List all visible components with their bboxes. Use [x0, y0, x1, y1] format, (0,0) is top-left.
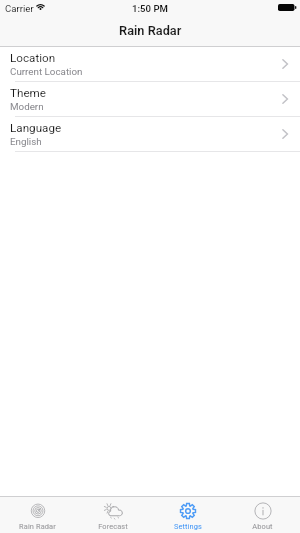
staticText: Rain Radar [119, 23, 182, 38]
staticText: Modern [10, 101, 44, 112]
staticText: Forecast [98, 522, 128, 531]
staticText: Theme [10, 86, 47, 100]
button[interactable]: Rain Radar [0, 497, 75, 533]
staticText: Current Location [10, 66, 83, 77]
staticText: Rain Radar [19, 522, 56, 531]
staticText: 1:50 PM [132, 3, 168, 14]
staticText: Settings [174, 522, 202, 531]
staticText: Carrier [5, 3, 34, 14]
button[interactable]: About [225, 497, 300, 533]
button[interactable]: Language [0, 117, 300, 152]
staticText: Language [10, 121, 62, 135]
staticText: English [10, 136, 42, 147]
button[interactable]: Theme [0, 82, 300, 117]
button[interactable]: Settings [150, 497, 225, 533]
staticText: Location [10, 51, 56, 65]
button[interactable]: Location [0, 47, 300, 82]
button[interactable]: Forecast [75, 497, 150, 533]
staticText: About [252, 522, 273, 531]
